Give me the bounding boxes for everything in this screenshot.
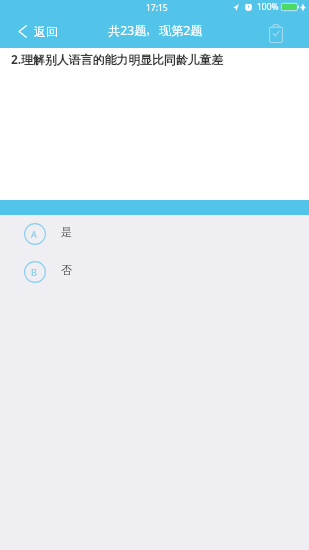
staticText: 否 xyxy=(61,264,72,278)
button[interactable]: 答题卡 xyxy=(266,23,286,43)
staticText: 是 xyxy=(61,226,72,240)
staticText: 2.理解别人语言的能力明显比同龄儿童差 xyxy=(11,51,224,67)
staticText: 共23题 xyxy=(108,22,147,39)
staticText: 100% xyxy=(257,1,279,13)
button[interactable]: B xyxy=(0,261,309,283)
staticText: B xyxy=(31,266,37,278)
staticText: ， xyxy=(142,22,145,37)
staticText: A xyxy=(31,228,37,240)
staticText: 17:15 xyxy=(146,2,168,14)
button[interactable]: A xyxy=(0,223,309,245)
staticText: 返回 xyxy=(34,24,58,39)
button[interactable]: 返回 xyxy=(18,24,58,39)
staticText: 现第2题 xyxy=(159,22,203,39)
